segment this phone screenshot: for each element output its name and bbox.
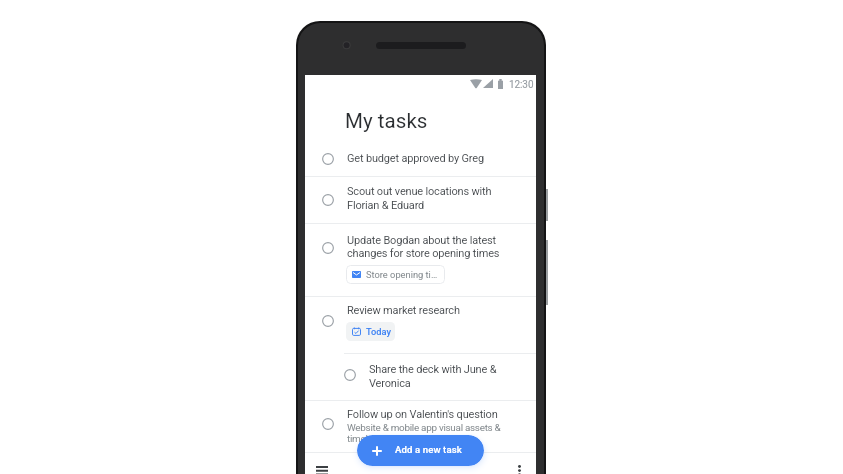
staticText: Store opening ti… [366, 269, 438, 280]
button[interactable] [305, 400, 536, 452]
button[interactable]: Today [346, 322, 395, 341]
staticText: Review market research [347, 304, 460, 317]
staticText: Update Bogdan about the latest [347, 234, 496, 247]
button[interactable] [305, 296, 536, 353]
staticText: changes for store opening times [347, 247, 500, 260]
staticText: Veronica [369, 377, 411, 390]
button[interactable] [305, 353, 536, 399]
button[interactable]: Menu [311, 459, 333, 474]
staticText: Share the deck with June & [369, 363, 497, 376]
staticText: Add a new task [395, 444, 462, 455]
staticText: Follow up on Valentin's question [347, 408, 498, 421]
button[interactable]: Store opening ti… [346, 265, 445, 284]
staticText: My tasks [345, 109, 428, 133]
staticText: Get budget approved by Greg [347, 152, 484, 165]
staticText: timel [347, 433, 368, 445]
button[interactable]: More options [508, 459, 530, 474]
staticText: Scout out venue locations with [347, 185, 492, 198]
staticText: Website & mobile app visual assets & [347, 422, 501, 434]
button[interactable] [305, 176, 536, 224]
staticText: Today [366, 326, 392, 337]
staticText: Florian & Eduard [347, 199, 425, 212]
button[interactable] [305, 141, 536, 176]
button[interactable] [305, 223, 536, 296]
staticText: 12:30 [509, 79, 534, 91]
button[interactable]: Add a new task [357, 435, 484, 466]
